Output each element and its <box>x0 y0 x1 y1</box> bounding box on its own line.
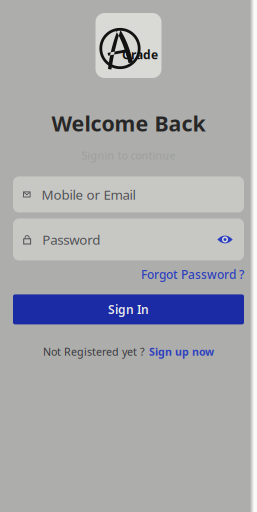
staticText: Forgot Password ? <box>141 266 244 282</box>
staticText: Grade <box>122 46 158 62</box>
button[interactable]: Password <box>13 218 244 260</box>
staticText: Sign In <box>108 301 149 317</box>
button[interactable]: Sign up now <box>149 344 214 359</box>
staticText: Mobile or Email <box>42 186 136 203</box>
staticText: Password <box>42 231 100 248</box>
staticText: Signin to continue <box>81 148 175 162</box>
button[interactable]: Forgot Password ? <box>141 266 244 282</box>
button[interactable]: Mobile or Email <box>13 176 244 212</box>
staticText: Sign up now <box>149 344 214 359</box>
button[interactable]: Sign In <box>13 294 244 324</box>
staticText: Welcome Back <box>51 109 205 137</box>
staticText: Not Registered yet ? <box>43 344 145 359</box>
